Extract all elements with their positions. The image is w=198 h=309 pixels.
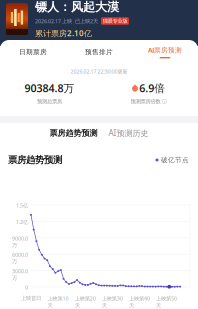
staticText: 上映第30天 — [102, 295, 123, 309]
staticText: 0 — [25, 284, 28, 291]
staticText: 6.9倍 — [139, 81, 165, 95]
button[interactable]: AI票房预测 — [132, 45, 198, 59]
staticText: AI票房预测 — [148, 46, 182, 54]
staticText: 上映第10天 — [48, 295, 69, 309]
staticText: 1.2亿 — [16, 218, 28, 225]
staticText: 1.5亿 — [16, 202, 28, 209]
staticText: 票房趋势预测 — [8, 154, 62, 166]
staticText: 90384.8万 — [24, 81, 74, 95]
staticText: 预测票房倍数 — [131, 98, 161, 105]
staticText: 累计票房2.10亿 — [35, 28, 92, 38]
staticText: 2026.02.17 22:30:00更新 — [70, 68, 127, 75]
staticText: 上映第50天 — [156, 295, 177, 309]
staticText: 票房趋势预测 — [49, 128, 97, 138]
staticText: 6000.0万 — [12, 251, 28, 265]
staticText: 3000.0万 — [12, 268, 28, 281]
staticText: 预售排片 — [85, 48, 113, 56]
button[interactable]: 预售排片 — [66, 45, 132, 59]
staticText: 镖人：风起大漠 — [35, 0, 119, 14]
staticText: 9000.0万 — [12, 235, 28, 248]
staticText: 已上映2天 — [75, 17, 98, 25]
staticText: 上映首日 — [21, 295, 41, 302]
staticText: 预测总票房 — [37, 98, 62, 105]
button[interactable]: 日期票房 — [0, 45, 66, 59]
staticText: AI预测历史 — [108, 128, 148, 138]
staticText: 上映第40天 — [129, 295, 150, 309]
staticText: 猫眼专业版 — [102, 18, 127, 24]
button[interactable]: AI预测历史 — [108, 128, 148, 138]
staticText: 2026.02.17 上映 — [35, 17, 72, 25]
staticText: 上映第20天 — [75, 295, 96, 309]
staticText: 日期票房 — [19, 48, 47, 56]
staticText: 破亿节点 — [161, 156, 189, 164]
button[interactable]: 票房趋势预测 — [49, 128, 97, 138]
